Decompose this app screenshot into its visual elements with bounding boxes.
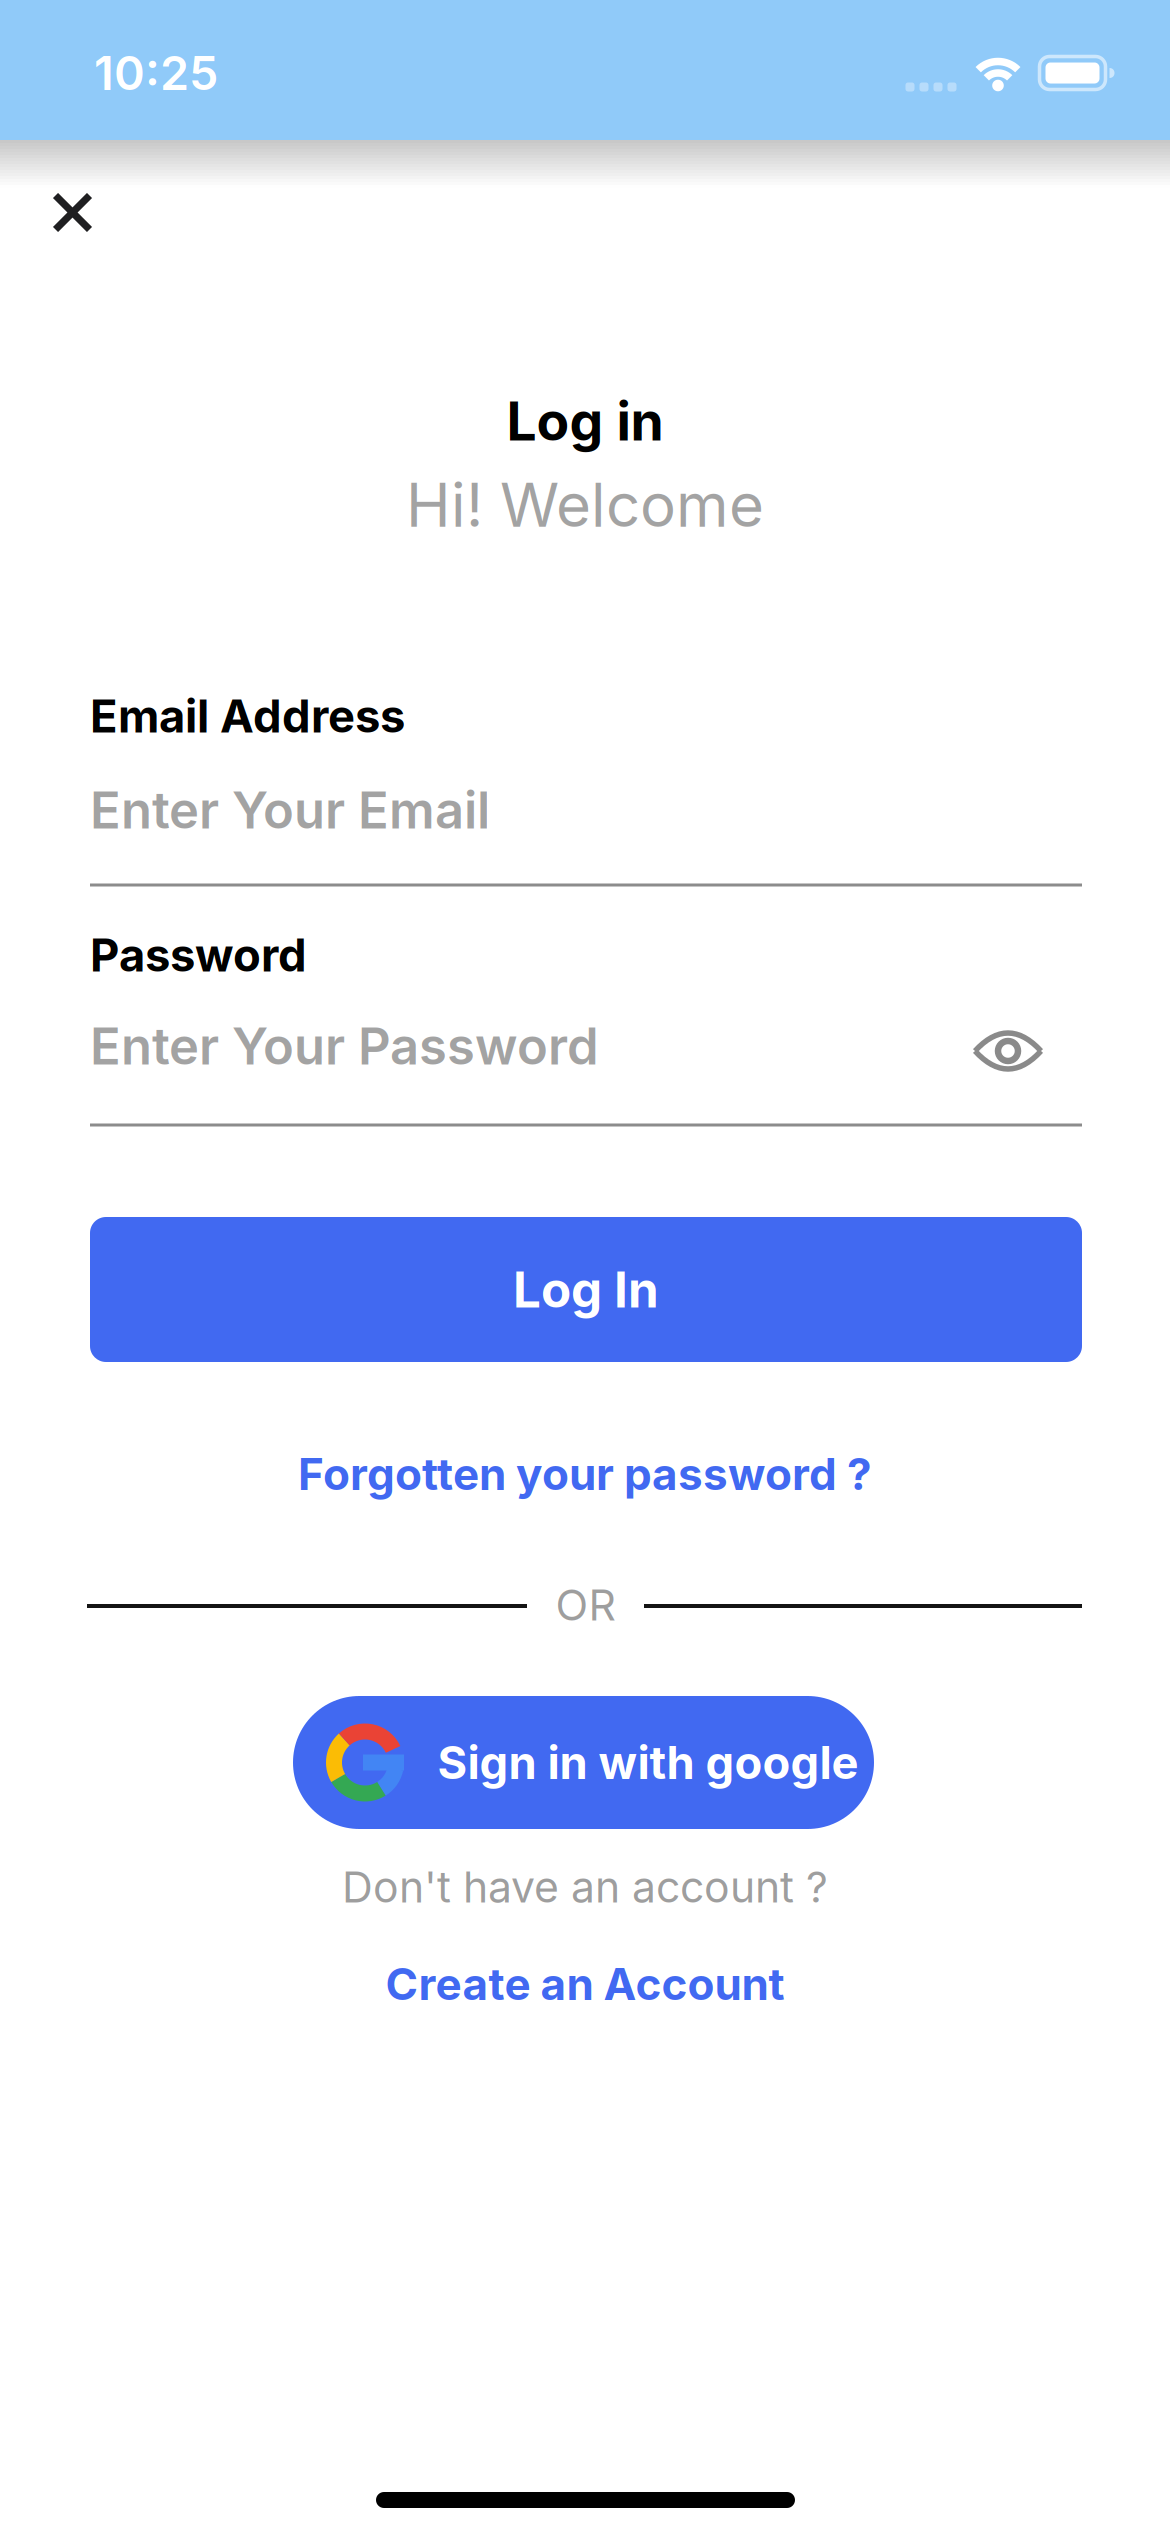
staticText: Don't have an account ?	[342, 1862, 828, 1912]
staticText: Forgotten your password ?	[298, 1448, 872, 1500]
button[interactable]	[972, 1029, 1044, 1073]
button[interactable]: Create an Account	[385, 1958, 784, 2010]
staticText: Enter Your Password	[90, 1016, 599, 1076]
staticText: Hi! Welcome	[406, 470, 764, 540]
staticText: Sign in with google	[437, 1736, 858, 1789]
staticText: Email Address	[90, 689, 405, 743]
staticText: OR	[555, 1580, 615, 1630]
staticText: Create an Account	[385, 1958, 784, 2010]
button[interactable]	[52, 192, 93, 233]
staticText: Log In	[513, 1260, 659, 1319]
button[interactable]: Forgotten your password ?	[298, 1448, 872, 1500]
staticText: Password	[90, 928, 307, 982]
button[interactable]: Sign in with google	[293, 1696, 874, 1829]
staticText: 10:25	[94, 45, 218, 101]
button[interactable]: Log In	[90, 1217, 1082, 1362]
staticText: Log in	[506, 389, 663, 452]
staticText: Enter Your Email	[90, 780, 490, 840]
